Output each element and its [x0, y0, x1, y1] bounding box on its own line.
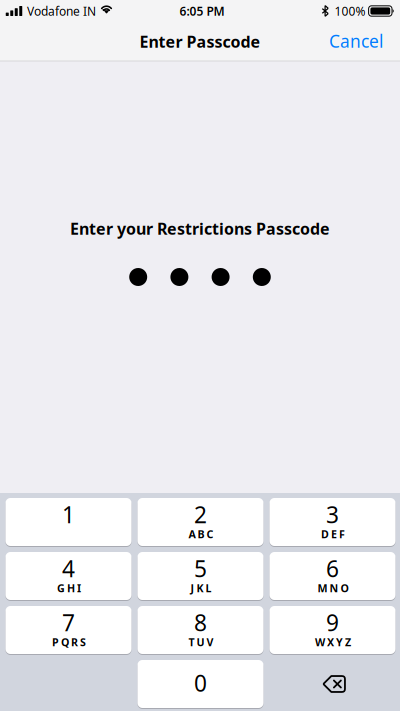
staticText: 8: [194, 607, 207, 637]
staticText: 7: [62, 607, 75, 637]
button[interactable]: 4: [5, 552, 131, 600]
staticText: Enter Passcode: [139, 31, 260, 52]
staticText: 4: [62, 553, 75, 583]
button[interactable]: 2: [137, 498, 263, 546]
staticText: Enter your Restrictions Passcode: [70, 218, 330, 239]
button[interactable]: 9: [269, 606, 395, 654]
staticText: 6: [326, 553, 339, 583]
staticText: Vodafone IN: [27, 3, 96, 19]
button[interactable]: 1: [5, 498, 131, 546]
button[interactable]: Delete: [271, 660, 397, 708]
staticText: 9: [326, 607, 339, 637]
button[interactable]: 8: [137, 606, 263, 654]
staticText: T U V: [188, 635, 213, 649]
staticText: Cancel: [329, 29, 383, 52]
staticText: 3: [326, 499, 339, 529]
button[interactable]: Cancel: [317, 20, 395, 61]
button[interactable]: 0: [137, 660, 263, 708]
staticText: 6:05 PM: [179, 3, 224, 19]
staticText: M N O: [317, 581, 348, 595]
button[interactable]: 5: [137, 552, 263, 600]
button[interactable]: 3: [269, 498, 395, 546]
staticText: P Q R S: [52, 635, 86, 649]
staticText: A B C: [188, 527, 213, 541]
staticText: 1: [62, 499, 75, 529]
staticText: 100%: [335, 3, 366, 19]
staticText: G H I: [57, 581, 81, 595]
staticText: 0: [194, 668, 207, 698]
staticText: D E F: [321, 527, 345, 541]
staticText: W X Y Z: [315, 635, 351, 649]
staticText: J K L: [190, 581, 211, 595]
button[interactable]: 7: [5, 606, 131, 654]
staticText: 5: [194, 553, 207, 583]
button[interactable]: 6: [269, 552, 395, 600]
staticText: 2: [194, 499, 207, 529]
